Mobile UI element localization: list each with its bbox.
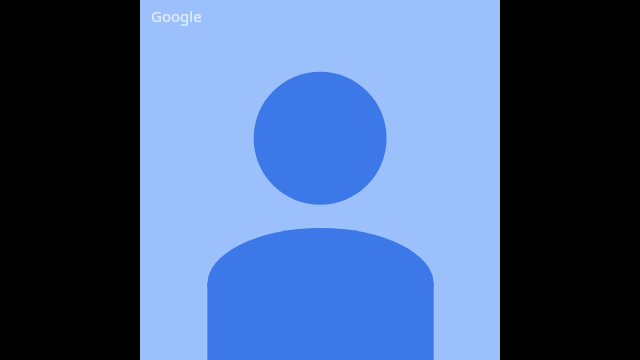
staticText: Google: [151, 6, 202, 26]
button[interactable]: Profile photo: [140, 0, 500, 360]
